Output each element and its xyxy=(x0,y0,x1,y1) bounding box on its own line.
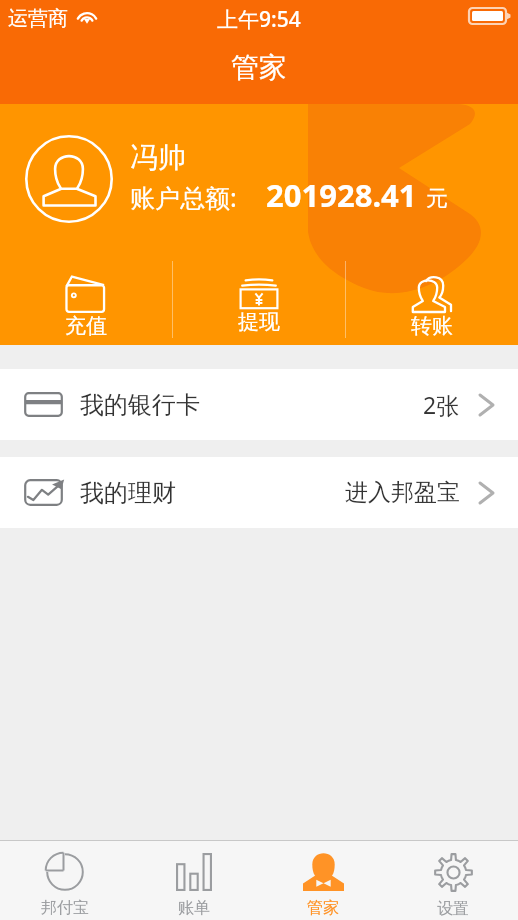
button[interactable]: 转账 xyxy=(345,257,518,345)
button[interactable]: 我的银行卡 xyxy=(0,369,518,440)
button[interactable]: 我的理财 xyxy=(0,457,518,528)
staticText: 转账 xyxy=(411,313,453,339)
staticText: 冯帅 xyxy=(130,140,186,175)
button[interactable]: 提现 xyxy=(172,257,345,345)
staticText: 我的银行卡 xyxy=(80,390,200,420)
staticText: 我的理财 xyxy=(80,478,176,508)
staticText: 201928.41 xyxy=(266,174,417,216)
staticText: 提现 xyxy=(238,309,280,335)
staticText: 邦付宝 xyxy=(41,898,89,918)
staticText: 充值 xyxy=(65,313,107,339)
button[interactable]: 管家 xyxy=(258,841,388,920)
staticText: 账户总额: xyxy=(130,180,237,214)
staticText: 设置 xyxy=(437,899,469,919)
staticText: 2张 xyxy=(423,389,460,420)
staticText: 进入邦盈宝 xyxy=(345,478,460,507)
button[interactable]: 账单 xyxy=(129,841,258,920)
button[interactable]: 充值 xyxy=(0,257,172,345)
staticText: 元 xyxy=(426,185,448,213)
staticText: 管家 xyxy=(231,50,287,85)
staticText: 账单 xyxy=(178,898,210,918)
staticText: 运营商 xyxy=(8,6,68,31)
staticText: 管家 xyxy=(307,898,339,918)
button[interactable]: 邦付宝 xyxy=(0,841,129,920)
staticText: 上午9:54 xyxy=(217,5,301,34)
button[interactable]: 设置 xyxy=(388,841,518,920)
